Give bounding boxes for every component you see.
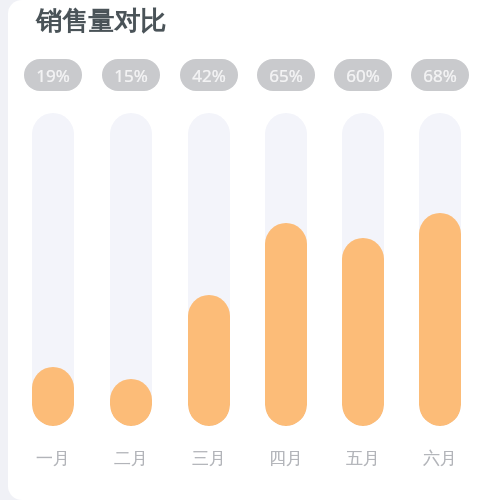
button[interactable] — [188, 113, 230, 426]
button[interactable]: 65% — [257, 59, 315, 91]
staticText: 五月 — [346, 448, 380, 469]
staticText: 19% — [36, 64, 70, 87]
button[interactable]: 60% — [334, 59, 392, 91]
button[interactable]: 19% — [24, 59, 82, 91]
staticText: 65% — [269, 64, 303, 87]
staticText: 15% — [114, 64, 148, 87]
button[interactable]: 68% — [411, 59, 469, 91]
button[interactable] — [32, 113, 74, 426]
button[interactable]: 42% — [180, 59, 238, 91]
button[interactable] — [342, 113, 384, 426]
staticText: 68% — [423, 64, 457, 87]
button[interactable] — [419, 113, 461, 426]
staticText: 42% — [192, 64, 226, 87]
staticText: 销售量对比 — [36, 5, 166, 38]
button[interactable]: 15% — [102, 59, 160, 91]
staticText: 四月 — [269, 448, 303, 469]
button[interactable] — [110, 113, 152, 426]
staticText: 三月 — [192, 448, 226, 469]
button[interactable] — [265, 113, 307, 426]
staticText: 二月 — [114, 448, 148, 469]
staticText: 六月 — [423, 448, 457, 469]
staticText: 60% — [346, 64, 380, 87]
staticText: 一月 — [36, 448, 70, 469]
